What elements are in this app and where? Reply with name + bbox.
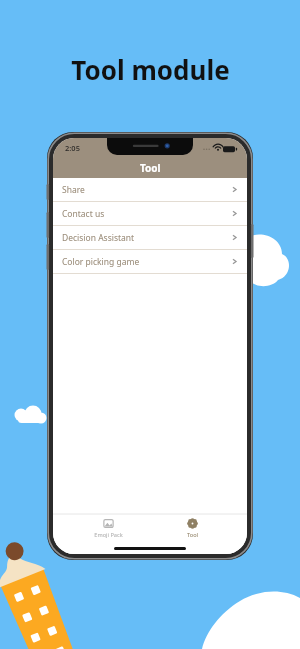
staticText: Color picking game: [62, 256, 231, 268]
staticText: Share: [62, 184, 231, 196]
staticText: Contact us: [62, 208, 231, 220]
staticText: Tool: [140, 161, 161, 175]
button[interactable]: Contact us: [53, 202, 247, 226]
staticText: Tool module: [71, 52, 230, 87]
staticText: Decision Assistant: [62, 232, 231, 244]
staticText: Tool: [187, 531, 198, 539]
button[interactable]: Decision Assistant: [53, 226, 247, 250]
staticText: 2:05: [65, 143, 80, 153]
button[interactable]: Tool: [162, 514, 222, 544]
button[interactable]: Share: [53, 178, 247, 202]
button[interactable]: Color picking game: [53, 250, 247, 274]
button[interactable]: Emoji Pack: [78, 514, 138, 544]
staticText: Emoji Pack: [94, 531, 123, 539]
